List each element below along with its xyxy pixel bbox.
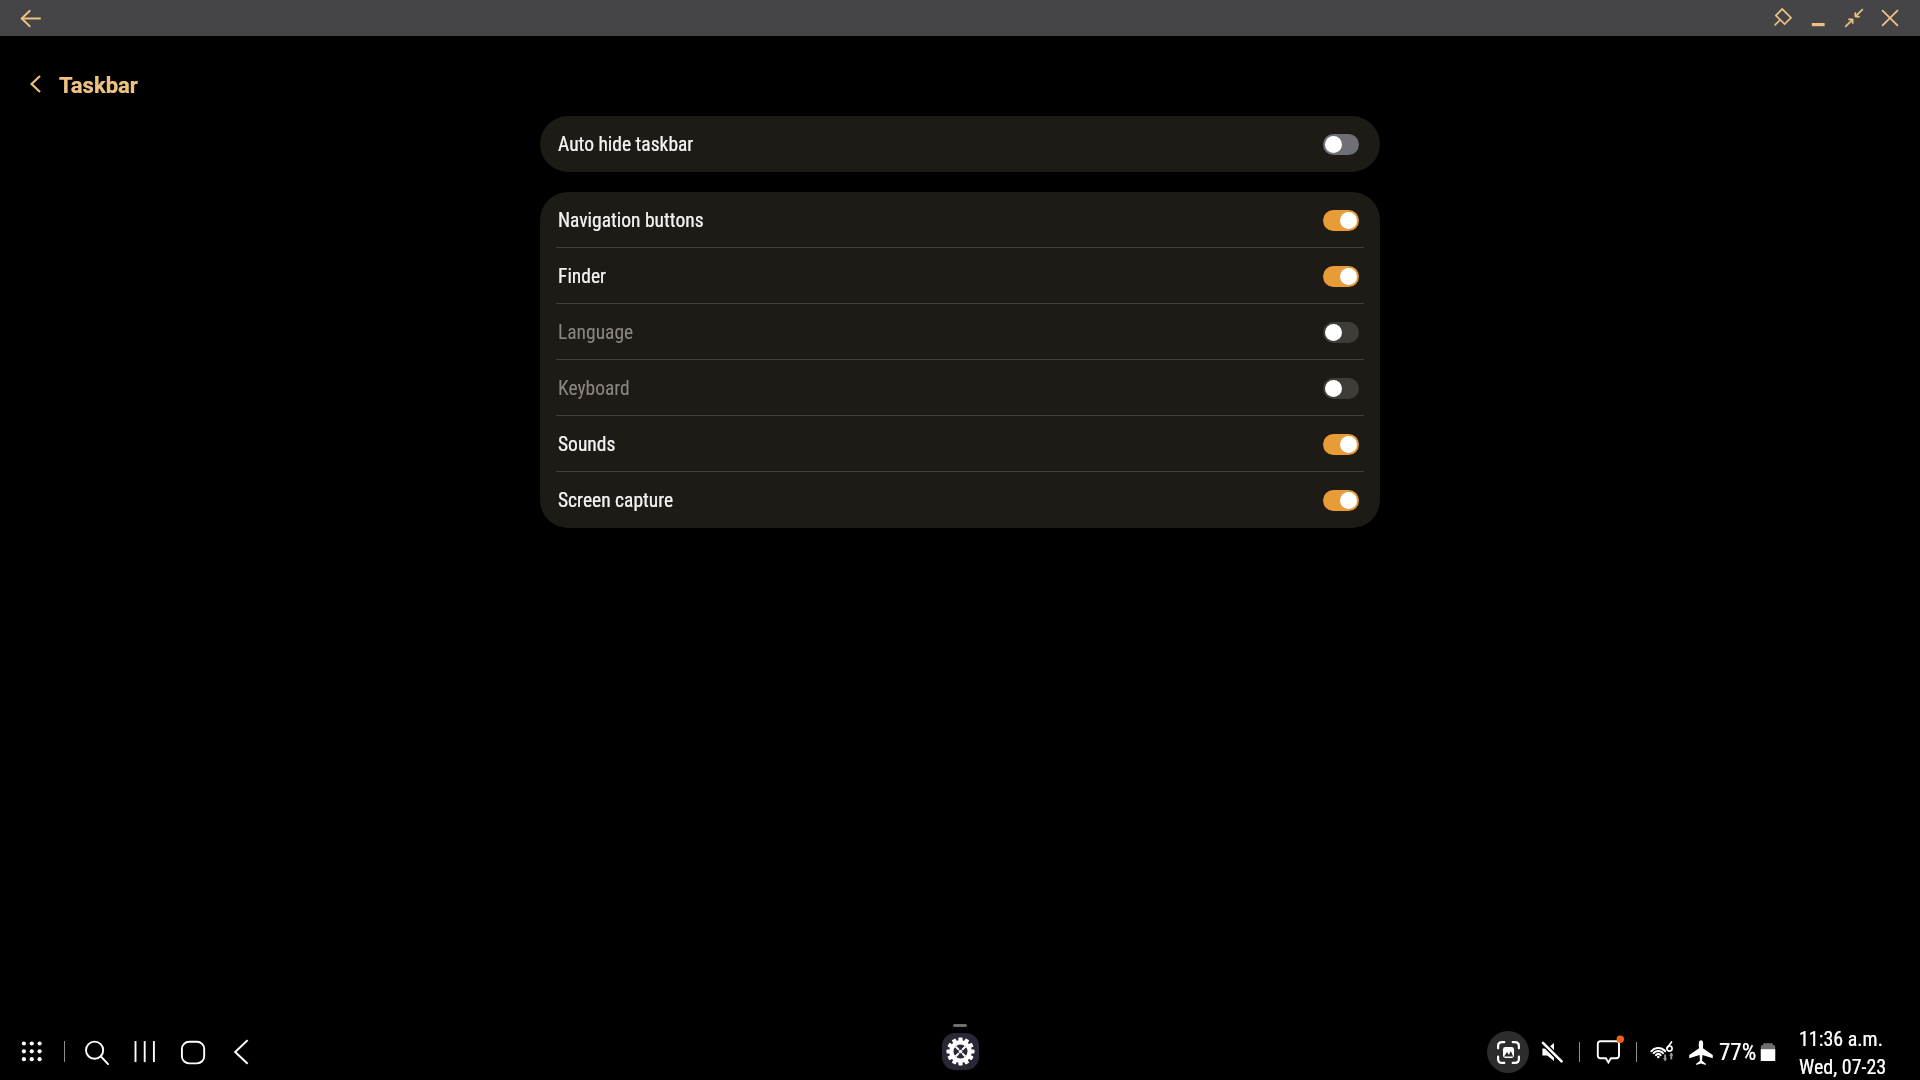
staticText: 77%	[1719, 1039, 1757, 1066]
button[interactable]: Taskbar	[20, 65, 144, 103]
button[interactable]: Off	[1323, 322, 1359, 343]
staticText: Navigation buttons	[558, 209, 704, 232]
button[interactable]: Off	[1323, 378, 1359, 399]
button[interactable]: On	[1323, 210, 1359, 231]
button[interactable]: Back	[224, 1028, 258, 1076]
button[interactable]: On	[1323, 434, 1359, 455]
staticText: Taskbar	[59, 73, 138, 99]
staticText: Keyboard	[558, 377, 630, 400]
button[interactable]: Wi-Fi	[1649, 1040, 1677, 1064]
button[interactable]: Keyboard	[540, 360, 1380, 416]
button[interactable]: Finder	[540, 248, 1380, 304]
staticText: 11:36 a.m.	[1799, 1027, 1883, 1050]
button[interactable]: Back	[12, 0, 48, 36]
button[interactable]: Auto hide taskbar	[540, 116, 1380, 172]
button[interactable]: Recent apps	[126, 1028, 164, 1076]
staticText: Finder	[558, 265, 607, 288]
button[interactable]: Pin	[1764, 0, 1800, 36]
button[interactable]: On	[1323, 266, 1359, 287]
button[interactable]: Screen capture	[540, 472, 1380, 528]
button[interactable]: Language	[540, 304, 1380, 360]
staticText: Screen capture	[558, 489, 674, 512]
button[interactable]: Minimize	[1800, 0, 1836, 36]
staticText: Sounds	[558, 433, 616, 456]
button[interactable]: Home	[172, 1028, 214, 1076]
button[interactable]: Messages	[1592, 1034, 1628, 1066]
button[interactable]: Sounds	[540, 416, 1380, 472]
button[interactable]: Sound off	[1542, 1042, 1562, 1062]
button[interactable]: Restore	[1836, 0, 1872, 36]
staticText: Wed, 07-23	[1799, 1055, 1887, 1078]
button[interactable]: Off	[1323, 134, 1359, 155]
button[interactable]: Search	[74, 1028, 118, 1076]
button[interactable]: On	[1323, 490, 1359, 511]
button[interactable]: Navigation buttons	[540, 192, 1380, 248]
staticText: Language	[558, 321, 634, 344]
staticText: Auto hide taskbar	[558, 133, 694, 156]
button[interactable]: Apps	[12, 1028, 52, 1076]
button[interactable]: Screenshot	[1487, 1031, 1529, 1073]
button[interactable]: Airplane mode	[1689, 1039, 1713, 1065]
button[interactable]: Settings	[942, 1033, 979, 1070]
button[interactable]: Close	[1872, 0, 1908, 36]
